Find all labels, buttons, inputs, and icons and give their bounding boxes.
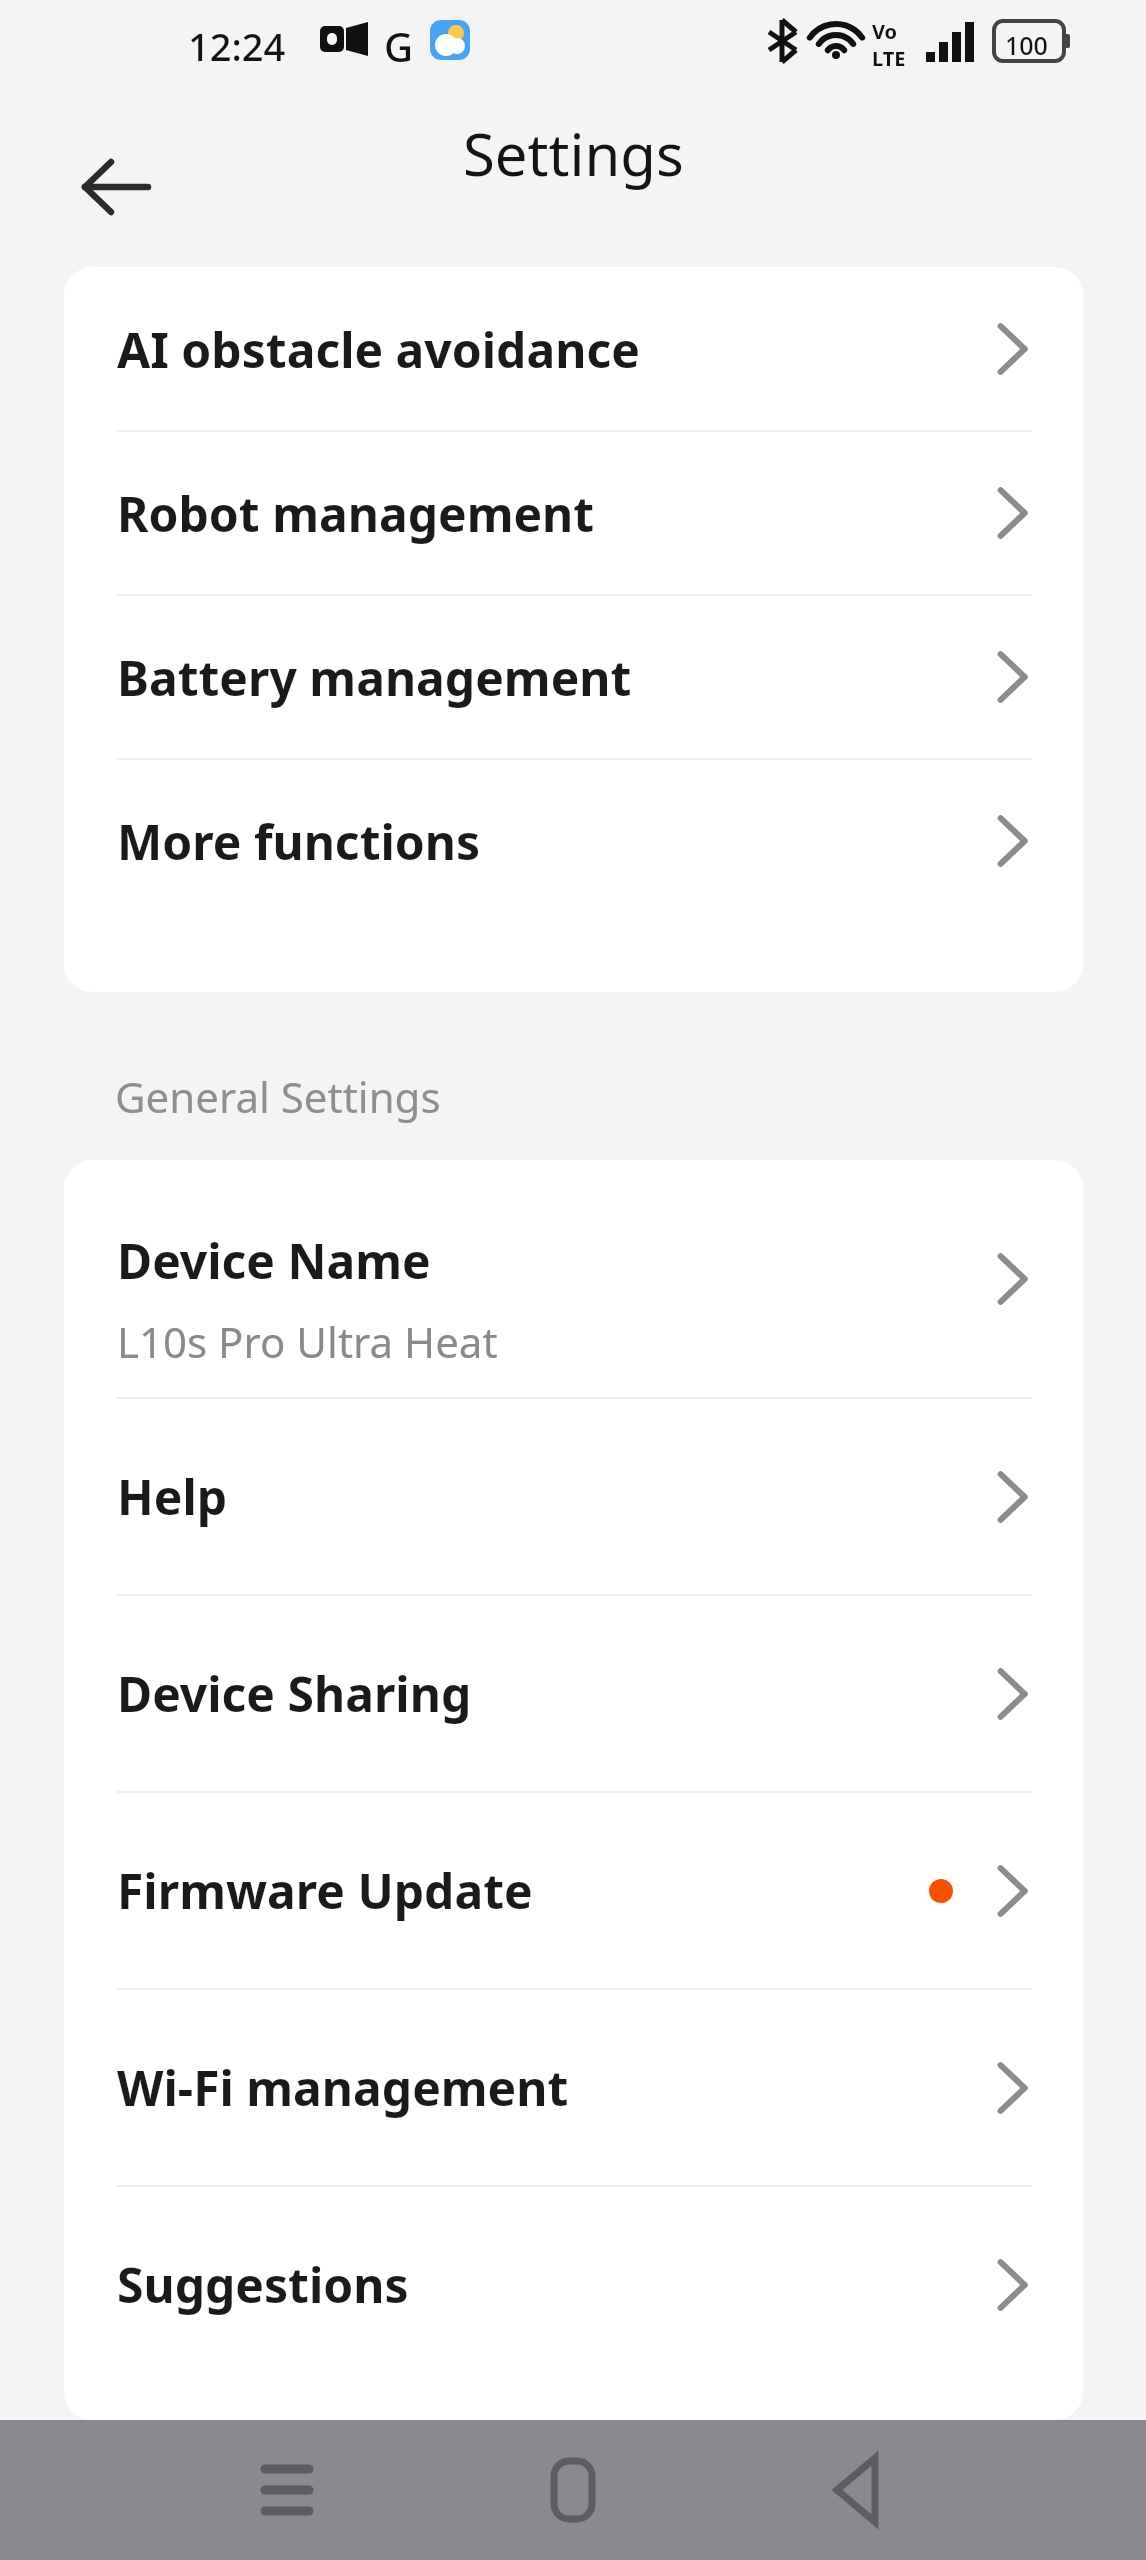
staticText: Device Sharing — [117, 1661, 472, 1726]
button[interactable]: Back — [789, 2440, 929, 2540]
button[interactable]: Device Sharing — [64, 1595, 1083, 1792]
staticText: AI obstacle avoidance — [117, 317, 640, 382]
staticText: Firmware Update — [117, 1858, 533, 1923]
staticText: L10s Pro Ultra Heat — [117, 1313, 498, 1370]
button[interactable]: Robot management — [64, 431, 1083, 595]
staticText: General Settings — [115, 1068, 441, 1125]
staticText: 100 — [1005, 28, 1048, 62]
staticText: Battery management — [117, 645, 632, 710]
staticText: 12:24 — [188, 20, 286, 72]
button[interactable]: More functions — [64, 759, 1083, 923]
staticText: Settings — [463, 114, 684, 193]
button[interactable]: Help — [64, 1398, 1083, 1595]
button[interactable]: Device Name — [64, 1160, 1083, 1398]
staticText: Vo — [872, 18, 898, 45]
staticText: Device Name — [117, 1228, 431, 1293]
button[interactable]: Home — [503, 2440, 643, 2540]
button[interactable]: Recents — [217, 2440, 357, 2540]
staticText: G — [384, 19, 414, 73]
button[interactable]: Suggestions — [64, 2186, 1083, 2383]
staticText: Wi-Fi management — [117, 2055, 569, 2120]
button[interactable]: Firmware Update — [64, 1792, 1083, 1989]
staticText: Suggestions — [117, 2252, 409, 2317]
staticText: LTE — [872, 45, 906, 72]
staticText: Robot management — [117, 481, 595, 546]
button[interactable]: Back — [56, 140, 176, 234]
button[interactable]: Wi-Fi management — [64, 1989, 1083, 2186]
staticText: Help — [117, 1464, 228, 1529]
button[interactable]: AI obstacle avoidance — [64, 267, 1083, 431]
button[interactable]: Battery management — [64, 595, 1083, 759]
staticText: More functions — [117, 809, 481, 874]
